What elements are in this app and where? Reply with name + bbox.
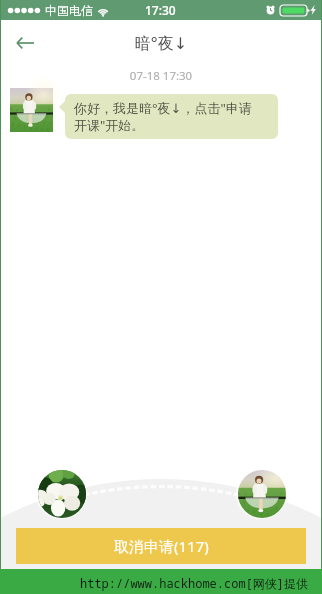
staticText: 中国电信 xyxy=(45,3,93,18)
staticText: http://www.hackhome.com[网侠]提供 xyxy=(80,575,309,591)
staticText: 取消申请(117) xyxy=(114,536,209,556)
staticText: 07-18 17:30 xyxy=(0,68,322,84)
staticText: 你好，我是暗°夜↓，点击"申请开课"开始。 xyxy=(74,99,264,134)
staticText: 暗°夜↓ xyxy=(0,32,322,54)
button[interactable]: 取消申请(117) xyxy=(16,528,306,564)
staticText: 17:30 xyxy=(145,2,176,18)
button[interactable]: Back xyxy=(4,22,46,64)
